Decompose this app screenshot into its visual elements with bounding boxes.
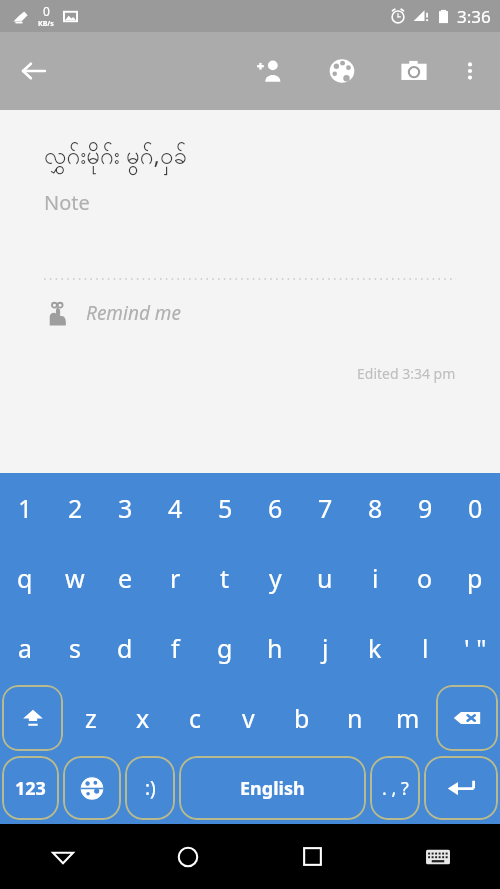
staticText: Note — [44, 189, 90, 216]
button[interactable]: i — [350, 543, 400, 613]
button[interactable]: k — [350, 613, 400, 683]
staticText: g — [217, 631, 233, 665]
staticText: u — [317, 561, 333, 595]
button[interactable]: Punctuation — [370, 756, 420, 820]
button[interactable]: w — [50, 543, 100, 613]
staticText: p — [467, 561, 483, 595]
button[interactable]: d — [100, 613, 150, 683]
staticText: 2 — [68, 491, 83, 525]
staticText: 0 — [43, 3, 50, 19]
button[interactable]: Home — [125, 824, 250, 889]
button[interactable]: y — [250, 543, 300, 613]
button[interactable]: e — [100, 543, 150, 613]
button[interactable]: 5 — [200, 473, 250, 543]
staticText: z — [85, 701, 97, 735]
button[interactable]: Space — [179, 756, 366, 820]
button[interactable]: ' " — [450, 613, 500, 683]
staticText: l — [422, 631, 429, 665]
button[interactable]: 2 — [50, 473, 100, 543]
staticText: c — [189, 701, 202, 735]
button[interactable]: 1 — [0, 473, 50, 543]
staticText: 6 — [268, 491, 283, 525]
button[interactable]: p — [450, 543, 500, 613]
button[interactable]: l — [400, 613, 450, 683]
button[interactable]: Switch keyboard — [375, 824, 500, 889]
staticText: English — [240, 776, 305, 801]
button[interactable]: n — [328, 683, 381, 753]
staticText: 9 — [418, 491, 433, 525]
staticText: 1 — [18, 491, 33, 525]
staticText: ' " — [464, 631, 487, 665]
button[interactable]: m — [381, 683, 434, 753]
staticText: 3 — [118, 491, 133, 525]
button[interactable]: u — [300, 543, 350, 613]
button[interactable]: x — [117, 683, 169, 753]
button[interactable]: o — [400, 543, 450, 613]
button[interactable]: 0 — [450, 473, 500, 543]
button[interactable]: v — [222, 683, 275, 753]
button[interactable]: Back — [8, 45, 60, 97]
staticText: x — [136, 701, 150, 735]
button[interactable]: q — [0, 543, 50, 613]
button[interactable]: c — [169, 683, 222, 753]
staticText: 8 — [368, 491, 383, 525]
button[interactable]: z — [65, 683, 117, 753]
button[interactable]: Enter — [424, 756, 498, 820]
staticText: v — [242, 701, 255, 735]
staticText: 5 — [218, 491, 233, 525]
button[interactable]: Emoji — [125, 756, 175, 820]
button[interactable]: r — [150, 543, 200, 613]
staticText: 4 — [168, 491, 183, 525]
button[interactable]: s — [50, 613, 100, 683]
button[interactable]: Shift — [2, 685, 63, 751]
staticText: i — [372, 561, 379, 595]
button[interactable]: 3 — [100, 473, 150, 543]
button[interactable]: Remind me — [0, 300, 500, 326]
button[interactable]: Camera — [390, 47, 438, 95]
button[interactable]: t — [200, 543, 250, 613]
button[interactable]: g — [200, 613, 250, 683]
staticText: လွှဂ်းမိုဂ်း မွဂ်,ဝှခ် — [44, 138, 187, 175]
button[interactable]: Backspace — [436, 685, 498, 751]
staticText: a — [18, 631, 33, 665]
staticText: KB/s — [38, 19, 54, 29]
button[interactable]: 7 — [300, 473, 350, 543]
staticText: j — [322, 631, 329, 665]
staticText: d — [117, 631, 133, 665]
button[interactable]: Add person — [246, 47, 294, 95]
staticText: m — [396, 701, 420, 735]
staticText: f — [171, 631, 180, 665]
staticText: q — [17, 561, 33, 595]
button[interactable]: 123 symbols — [2, 756, 59, 820]
button[interactable]: h — [250, 613, 300, 683]
button[interactable]: 8 — [350, 473, 400, 543]
button[interactable]: Change language — [63, 756, 121, 820]
staticText: n — [347, 701, 363, 735]
button[interactable]: b — [275, 683, 328, 753]
staticText: r — [170, 561, 181, 595]
staticText: 3:36 — [457, 5, 491, 28]
staticText: w — [65, 561, 85, 595]
button[interactable]: a — [0, 613, 50, 683]
button[interactable]: 4 — [150, 473, 200, 543]
staticText: o — [417, 561, 433, 595]
staticText: y — [269, 561, 282, 595]
staticText: k — [368, 631, 382, 665]
staticText: 123 — [15, 776, 46, 801]
staticText: e — [118, 561, 133, 595]
button[interactable]: Hide keyboard — [0, 824, 125, 889]
button[interactable]: j — [300, 613, 350, 683]
button[interactable]: 6 — [250, 473, 300, 543]
button[interactable]: More options — [446, 47, 494, 95]
staticText: . , ? — [382, 776, 409, 801]
button[interactable]: Change color — [318, 47, 366, 95]
staticText: Remind me — [86, 300, 181, 326]
button[interactable]: Recents — [250, 824, 375, 889]
staticText: 0 — [468, 491, 483, 525]
button[interactable]: f — [150, 613, 200, 683]
button[interactable]: 9 — [400, 473, 450, 543]
staticText: 7 — [318, 491, 333, 525]
staticText: Edited 3:34 pm — [357, 364, 456, 383]
staticText: s — [69, 631, 81, 665]
staticText: t — [220, 561, 230, 595]
